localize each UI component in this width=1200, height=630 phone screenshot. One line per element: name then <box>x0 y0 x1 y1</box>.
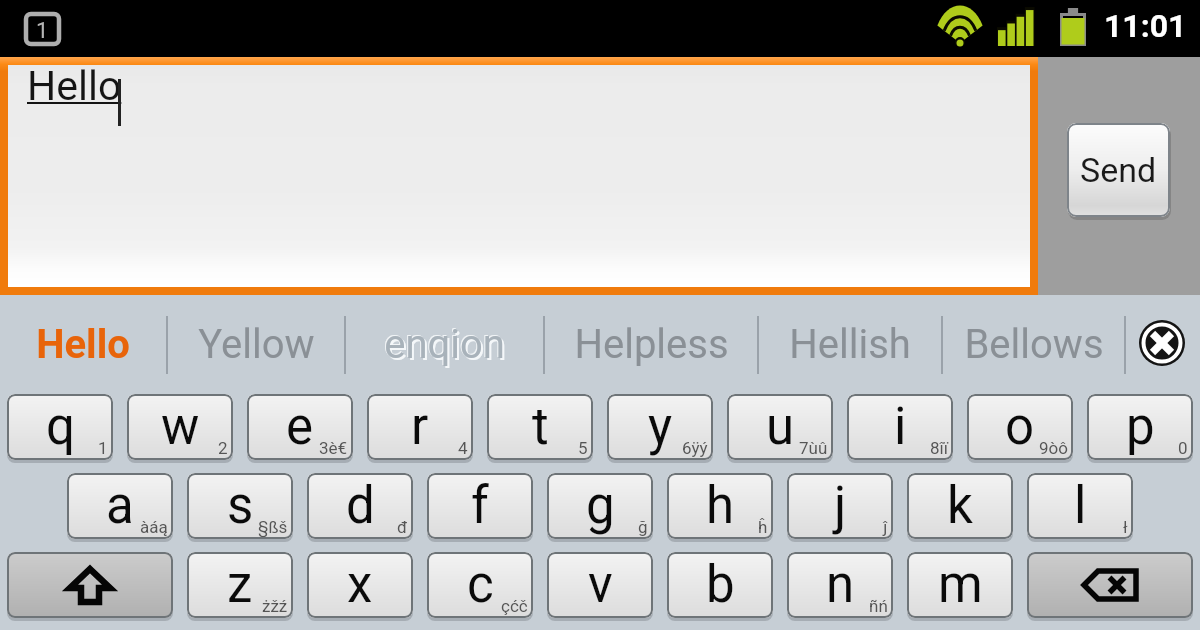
staticText: j <box>834 476 847 536</box>
button[interactable]: Hellish <box>759 295 941 394</box>
staticText: Yellow <box>198 321 315 368</box>
staticText: h <box>706 476 735 536</box>
button[interactable]: n <box>787 552 893 618</box>
staticText: g <box>586 476 615 536</box>
button[interactable]: Yellow <box>168 295 344 394</box>
button[interactable]: 1 notification <box>24 12 61 46</box>
staticText: e <box>286 397 314 457</box>
staticText: 1 <box>98 438 108 458</box>
button[interactable]: z <box>187 552 293 618</box>
button[interactable]: w <box>127 394 233 460</box>
button[interactable]: Shift <box>7 552 173 618</box>
staticText: enqion <box>386 323 507 370</box>
staticText: 2 <box>218 438 228 458</box>
staticText: Send <box>1080 150 1157 190</box>
staticText: o <box>1005 397 1035 457</box>
staticText: s <box>227 476 254 536</box>
button[interactable]: g <box>547 473 653 539</box>
staticText: u <box>766 397 795 457</box>
button[interactable]: c <box>427 552 533 618</box>
staticText: x <box>347 555 373 615</box>
staticText: ñń <box>869 596 888 616</box>
staticText: 4 <box>458 438 468 458</box>
staticText: 0 <box>1178 438 1188 458</box>
staticText: Hellish <box>789 321 911 368</box>
staticText: a <box>106 476 134 536</box>
staticText: 11:01 <box>1104 7 1187 45</box>
staticText: çćč <box>501 596 528 616</box>
staticText: 9òô <box>1039 438 1068 458</box>
staticText: n <box>826 555 855 615</box>
staticText: ğ <box>638 517 648 537</box>
staticText: m <box>938 555 983 615</box>
staticText: r <box>411 397 429 457</box>
staticText: 8îï <box>930 438 948 458</box>
staticText: ł <box>1123 517 1128 537</box>
button[interactable]: o <box>967 394 1073 460</box>
button[interactable]: t <box>487 394 593 460</box>
button[interactable]: b <box>667 552 773 618</box>
staticText: 1 <box>36 18 49 44</box>
staticText: żžź <box>262 596 288 616</box>
staticText: 7ùû <box>799 438 828 458</box>
button[interactable]: u <box>727 394 833 460</box>
staticText: p <box>1126 397 1155 457</box>
staticText: Helpless <box>574 321 729 368</box>
staticText: y <box>648 397 673 457</box>
staticText: c <box>467 555 494 615</box>
button[interactable]: Send <box>1067 123 1170 217</box>
button[interactable]: f <box>427 473 533 539</box>
staticText: đ <box>397 517 408 537</box>
staticText: v <box>588 555 613 615</box>
button[interactable]: v <box>547 552 653 618</box>
button[interactable]: Hello <box>0 295 166 394</box>
button[interactable]: a <box>67 473 173 539</box>
staticText: Hello <box>27 62 122 110</box>
staticText: §ßš <box>258 517 288 537</box>
staticText: enqion <box>384 321 505 368</box>
button[interactable]: Bellows <box>943 295 1124 394</box>
staticText: k <box>947 476 973 536</box>
staticText: àáą <box>140 517 168 537</box>
button[interactable]: y <box>607 394 713 460</box>
button[interactable]: enqion <box>346 295 543 394</box>
staticText: enqion <box>383 320 504 367</box>
staticText: i <box>894 397 907 457</box>
button[interactable]: Hello <box>8 65 1030 287</box>
staticText: Hello <box>36 321 130 368</box>
button[interactable]: j <box>787 473 893 539</box>
staticText: 5 <box>578 438 588 458</box>
staticText: l <box>1074 476 1087 536</box>
staticText: ĵ <box>883 517 888 537</box>
staticText: ĥ <box>758 517 768 537</box>
staticText: Bellows <box>964 321 1104 368</box>
button[interactable]: e <box>247 394 353 460</box>
button[interactable]: Clear suggestions <box>1126 295 1188 394</box>
staticText: 3è€ <box>319 438 348 458</box>
staticText: b <box>706 555 735 615</box>
button[interactable]: m <box>907 552 1013 618</box>
staticText: t <box>532 397 549 457</box>
button[interactable]: p <box>1087 394 1193 460</box>
button[interactable]: r <box>367 394 473 460</box>
staticText: z <box>227 555 253 615</box>
button[interactable]: x <box>307 552 413 618</box>
button[interactable]: h <box>667 473 773 539</box>
staticText: d <box>346 476 375 536</box>
staticText: 6ÿý <box>682 438 708 458</box>
button[interactable]: Backspace <box>1027 552 1193 618</box>
button[interactable]: Helpless <box>545 295 757 394</box>
button[interactable]: s <box>187 473 293 539</box>
button[interactable]: q <box>7 394 113 460</box>
button[interactable]: k <box>907 473 1013 539</box>
button[interactable]: l <box>1027 473 1133 539</box>
button[interactable]: d <box>307 473 413 539</box>
staticText: f <box>471 476 489 536</box>
staticText: w <box>161 397 200 457</box>
button[interactable]: i <box>847 394 953 460</box>
staticText: q <box>46 397 75 457</box>
